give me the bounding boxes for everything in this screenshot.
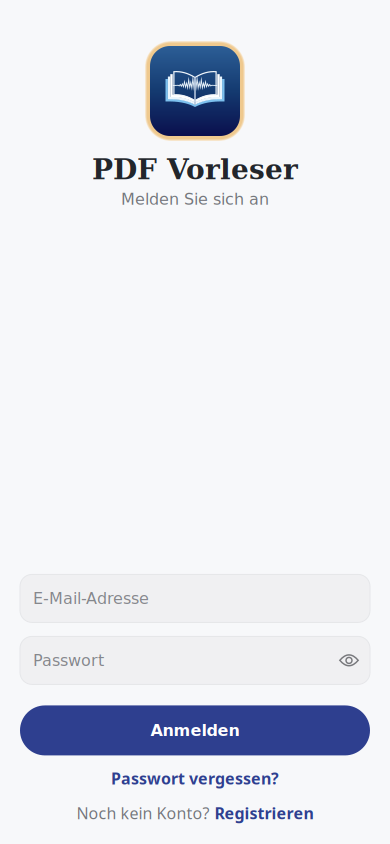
button[interactable]: Passwort anzeigen [334, 645, 364, 675]
staticText: Registrieren [214, 802, 313, 824]
staticText: Melden Sie sich an [121, 190, 269, 208]
staticText: Noch kein Konto? [76, 802, 209, 824]
button[interactable]: Anmelden [20, 705, 370, 755]
button[interactable]: Passwort vergessen? [111, 767, 279, 789]
staticText: Passwort vergessen? [111, 767, 279, 789]
staticText: PDF Vorleser [92, 153, 298, 186]
button[interactable]: Registrieren [214, 802, 313, 824]
staticText: Passwort [33, 651, 104, 670]
staticText: E-Mail-Adresse [33, 589, 149, 608]
staticText: Anmelden [150, 721, 239, 740]
